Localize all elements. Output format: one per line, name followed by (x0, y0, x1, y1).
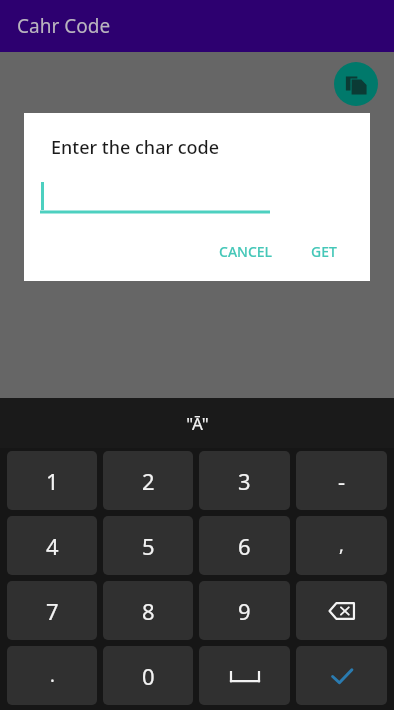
button[interactable]: . (7, 646, 97, 705)
button[interactable]: CANCEL (211, 236, 281, 267)
button[interactable]: 4 (7, 516, 97, 575)
button[interactable]: 1 (7, 451, 97, 510)
staticText: 3 (238, 466, 251, 496)
button[interactable]: , (296, 516, 387, 575)
staticText: 9 (238, 596, 251, 626)
button[interactable]: 2 (103, 451, 193, 510)
button[interactable]: 8 (103, 581, 193, 640)
staticText: Enter the char code (51, 135, 220, 160)
staticText: - (338, 466, 346, 496)
button[interactable]: 0 (103, 646, 193, 705)
staticText: 0 (142, 661, 155, 691)
staticText: 7 (46, 596, 59, 626)
button[interactable]: Backspace (296, 581, 387, 640)
staticText: 2 (142, 466, 155, 496)
staticText: 6 (238, 531, 251, 561)
button[interactable]: Copy (334, 62, 378, 106)
staticText: 5 (142, 531, 155, 561)
staticText: CANCEL (219, 242, 273, 261)
staticText: 1 (46, 466, 59, 496)
button[interactable] (40, 180, 270, 214)
staticText: . (50, 663, 55, 688)
staticText: 8 (142, 596, 155, 626)
button[interactable]: Done (296, 646, 387, 705)
button[interactable]: 5 (103, 516, 193, 575)
button[interactable]: - (296, 451, 387, 510)
button[interactable]: "Ā" (174, 408, 221, 439)
button[interactable]: GET (303, 236, 345, 267)
staticText: GET (311, 242, 337, 261)
button[interactable]: 3 (199, 451, 290, 510)
staticText: Cahr Code (17, 13, 111, 39)
staticText: , (339, 533, 344, 558)
button[interactable]: 7 (7, 581, 97, 640)
staticText: "Ā" (186, 412, 209, 435)
button[interactable]: Space (199, 646, 290, 705)
staticText: 4 (46, 531, 59, 561)
button[interactable]: 9 (199, 581, 290, 640)
button[interactable]: 6 (199, 516, 290, 575)
